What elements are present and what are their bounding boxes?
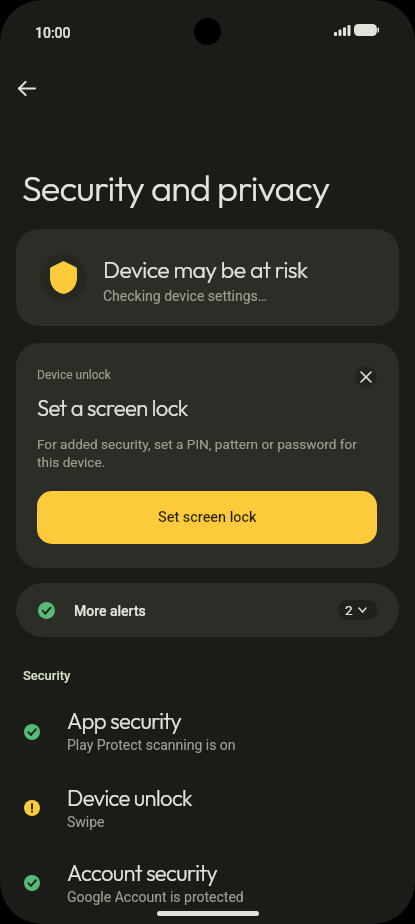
staticText: Google Account is protected [67, 889, 244, 905]
staticText: Checking device settings… [103, 288, 268, 304]
staticText: 10:00 [35, 25, 71, 41]
staticText: More alerts [74, 603, 146, 619]
staticText: Swipe [67, 814, 105, 830]
button[interactable]: Device may be at risk [16, 229, 399, 326]
staticText: Device unlock [37, 368, 111, 382]
staticText: Set screen lock [158, 509, 257, 526]
button[interactable]: More alerts [16, 583, 399, 637]
staticText: App security [67, 707, 182, 735]
staticText: Device may be at risk [103, 255, 308, 284]
staticText: 2 [345, 602, 353, 618]
button[interactable]: Dismiss [355, 366, 377, 388]
staticText: Security and privacy [22, 165, 330, 210]
button[interactable]: Account security [0, 858, 415, 924]
staticText: For added security, set a PIN, pattern o… [37, 436, 359, 470]
staticText: Play Protect scanning is on [67, 737, 236, 753]
staticText: Account security [67, 859, 218, 887]
button[interactable]: Device unlock [0, 783, 415, 853]
staticText: Security [23, 668, 71, 683]
staticText: Device unlock [67, 784, 193, 812]
button[interactable]: Back [4, 66, 48, 110]
staticText: Set a screen lock [37, 394, 188, 422]
button[interactable]: Set screen lock [37, 491, 377, 544]
button[interactable]: App security [0, 706, 415, 776]
